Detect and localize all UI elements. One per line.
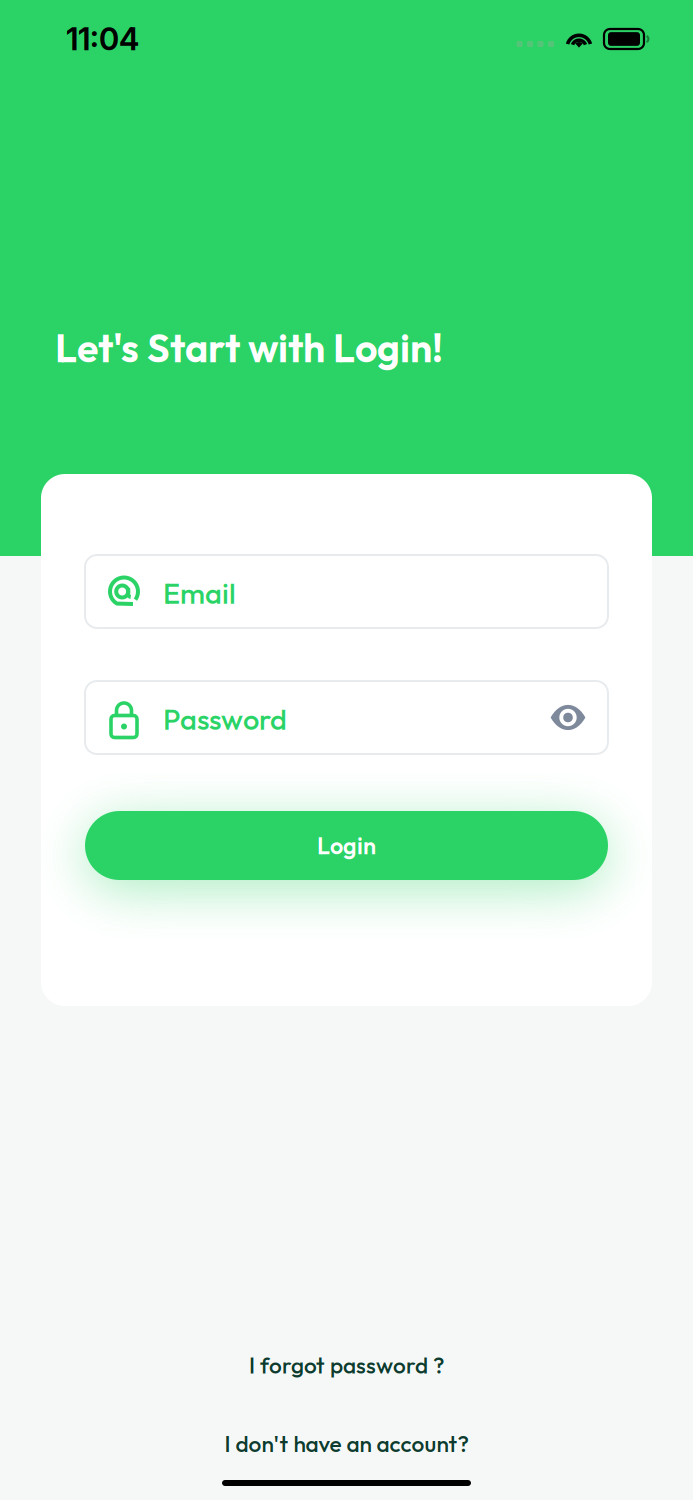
staticText: Let's Start with Login! [55, 323, 443, 373]
button[interactable]: I don't have an account? [224, 1429, 468, 1458]
staticText: I forgot password ? [249, 1351, 444, 1379]
staticText: Login [317, 831, 376, 860]
staticText: I don't have an account? [224, 1429, 468, 1458]
button[interactable]: Login [85, 811, 608, 880]
staticText: Password [163, 701, 287, 737]
staticText: Email [163, 575, 236, 611]
button[interactable]: I forgot password ? [249, 1351, 444, 1379]
staticText: 11:04 [66, 20, 139, 57]
